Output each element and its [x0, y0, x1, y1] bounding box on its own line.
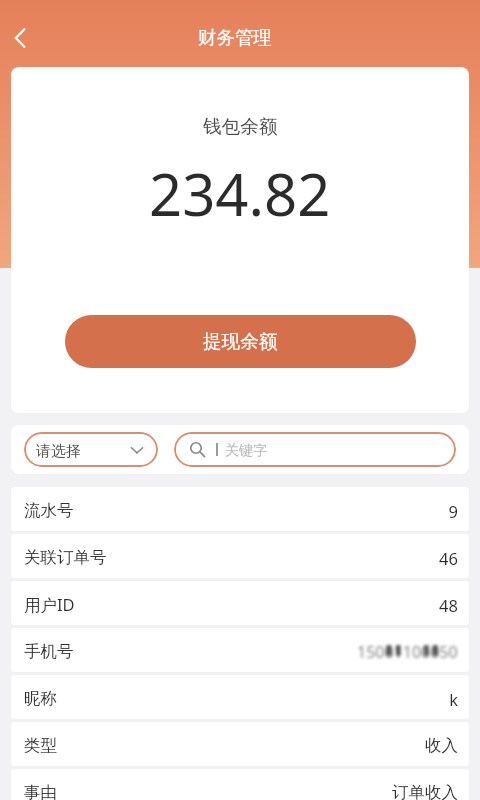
staticText: 关键字 — [225, 442, 267, 460]
button[interactable]: 用户ID — [11, 581, 469, 625]
staticText: 提现余额 — [203, 330, 278, 353]
staticText: 财务管理 — [198, 26, 272, 49]
staticText: 流水号 — [24, 500, 74, 521]
staticText: 订单收入 — [392, 782, 458, 800]
button[interactable]: 关键字 — [174, 432, 456, 467]
button[interactable]: 流水号 — [11, 487, 469, 531]
staticText: 用户ID — [24, 593, 75, 616]
staticText: 钱包余额 — [203, 115, 278, 138]
staticText: 类型 — [24, 735, 57, 756]
button[interactable]: 事由 — [11, 769, 469, 800]
staticText: 收入 — [425, 735, 458, 756]
button[interactable]: 昵称 — [11, 675, 469, 719]
staticText: 昵称 — [24, 688, 57, 709]
staticText: 46 — [439, 547, 458, 569]
button[interactable]: 提现余额 — [65, 315, 416, 368]
button[interactable]: 手机号 — [11, 628, 469, 672]
button[interactable]: Back — [0, 17, 42, 59]
staticText: 关联订单号 — [24, 547, 107, 568]
staticText: k — [449, 688, 458, 710]
staticText: 15001100050 — [357, 641, 458, 660]
staticText: 请选择 — [36, 442, 81, 461]
staticText: 事由 — [24, 782, 57, 800]
button[interactable]: 类型 — [11, 722, 469, 766]
staticText: 234.82 — [149, 154, 331, 233]
button[interactable]: 请选择 — [24, 432, 158, 467]
staticText: 手机号 — [24, 641, 74, 662]
staticText: 9 — [448, 500, 458, 522]
staticText: 48 — [439, 594, 458, 616]
button[interactable]: 关联订单号 — [11, 534, 469, 578]
